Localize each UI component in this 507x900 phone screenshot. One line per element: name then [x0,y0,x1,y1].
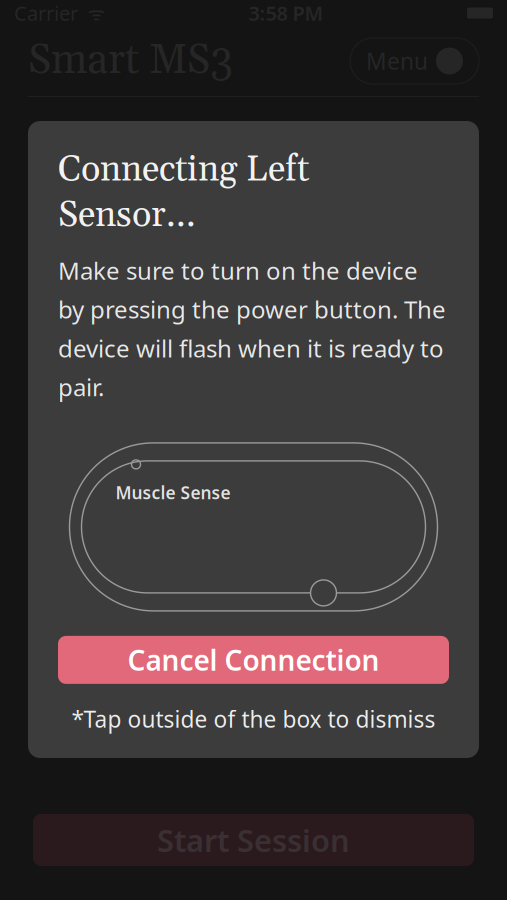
staticText: 3:58 PM [248,0,323,26]
staticText: Start Session [157,820,350,860]
staticText: Smart MS3 [28,35,233,87]
button[interactable]: Cancel Connection [58,636,449,684]
button[interactable]: Menu [350,38,479,84]
staticText: Connecting Left Sensor... [58,147,309,238]
button[interactable]: Start Session [33,814,474,866]
staticText: Make sure to turn on the device by press… [58,254,446,403]
staticText: Carrier [14,0,78,26]
staticText: *Tap outside of the box to dismiss [71,704,435,734]
staticText: Cancel Connection [127,641,379,678]
staticText: Muscle Sense [115,481,230,504]
staticText: Menu [366,46,428,76]
staticText: ᯤ [78,1,105,25]
